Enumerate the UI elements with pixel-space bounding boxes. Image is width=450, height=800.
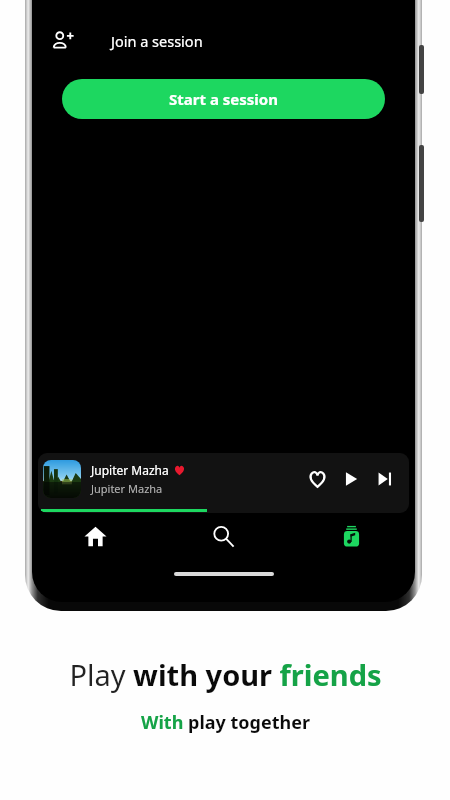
button[interactable]: Start a session xyxy=(62,79,385,119)
staticText: Play with your friends xyxy=(69,655,382,694)
button[interactable]: Jupiter Mazha xyxy=(38,453,409,513)
staticText: Jupiter Mazha xyxy=(91,481,163,496)
button[interactable]: Home xyxy=(32,518,159,554)
staticText: Jupiter Mazha xyxy=(91,462,169,478)
button[interactable]: Play xyxy=(337,465,365,493)
button[interactable]: Search xyxy=(159,518,287,554)
button[interactable]: Next xyxy=(371,465,399,493)
staticText: With play together xyxy=(141,710,310,735)
button[interactable]: Like xyxy=(303,465,331,493)
button[interactable]: Your Library xyxy=(287,518,415,554)
button[interactable]: Join a session xyxy=(32,24,415,57)
staticText: Start a session xyxy=(169,89,278,109)
staticText: Join a session xyxy=(111,31,203,51)
